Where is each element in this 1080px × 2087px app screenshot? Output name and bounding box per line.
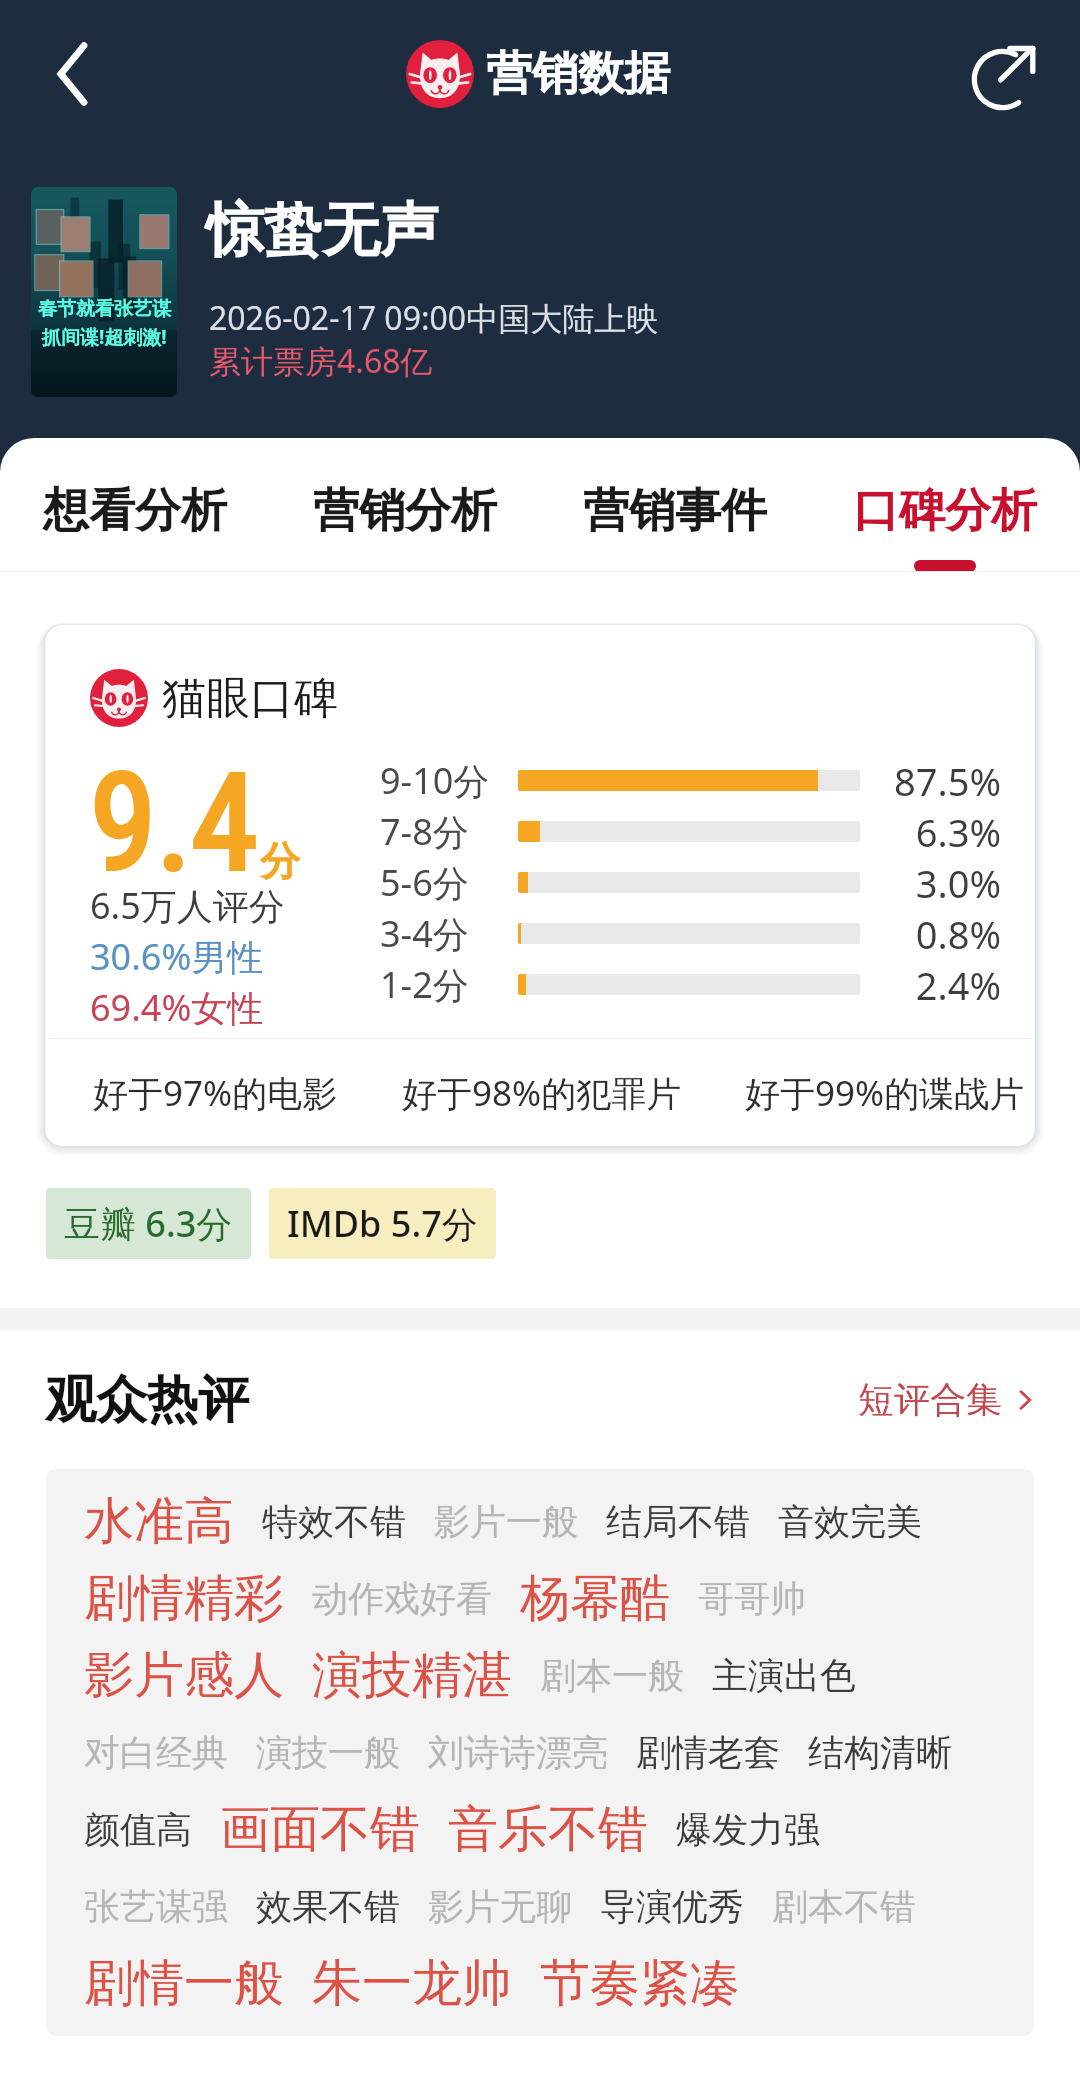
staticText: 春节就看张艺谋 [38, 297, 171, 321]
button[interactable]: 杨幂酷 [520, 1567, 670, 1630]
button[interactable]: 剧情一般 [84, 1952, 284, 2015]
button[interactable]: 水准高 [84, 1490, 234, 1553]
button[interactable]: 结构清晰 [808, 1730, 952, 1775]
staticText: 6.3% [873, 806, 1001, 857]
staticText: 2.4% [873, 959, 1001, 1010]
button[interactable]: 豆瓣 6.3分 [46, 1188, 251, 1259]
button[interactable]: 哥哥帅 [698, 1576, 806, 1621]
staticText: 抓间谍!超刺激! [42, 324, 167, 350]
staticText: 想看分析 [43, 482, 227, 540]
staticText: 2026-02-17 09:00中国大陆上映 [209, 296, 659, 340]
staticText: 好于98%的犯罪片 [402, 1069, 682, 1117]
staticText: 1-2分 [380, 960, 500, 1009]
button[interactable]: 影片感人 [84, 1644, 284, 1707]
staticText: 9.4 [90, 745, 258, 902]
staticText: 30.6%男性 [90, 932, 264, 981]
button[interactable]: 朱一龙帅 [312, 1952, 512, 2015]
button[interactable]: Share [962, 28, 1054, 120]
button[interactable]: 短评合集 [858, 1365, 1040, 1434]
staticText: 3.0% [873, 857, 1001, 908]
staticText: 惊蛰无声 [206, 194, 438, 267]
staticText: 营销分析 [313, 482, 497, 540]
staticText: 分 [260, 836, 300, 886]
button[interactable]: 爆发力强 [676, 1807, 820, 1852]
button[interactable]: 音乐不错 [448, 1798, 648, 1861]
staticText: 营销事件 [583, 482, 767, 540]
button[interactable]: 想看分析 [0, 438, 270, 572]
staticText: 9-10分 [380, 756, 500, 805]
staticText: 豆瓣 6.3分 [64, 1199, 233, 1248]
button[interactable]: 画面不错 [220, 1798, 420, 1861]
button[interactable]: 动作戏好看 [312, 1576, 492, 1621]
staticText: 0.8% [873, 908, 1001, 959]
button[interactable]: 营销事件 [540, 438, 810, 572]
button[interactable]: 影片一般 [434, 1499, 578, 1544]
button[interactable]: 演技精湛 [312, 1644, 512, 1707]
staticText: 短评合集 [858, 1377, 1002, 1422]
staticText: 观众热评 [45, 1368, 249, 1432]
staticText: 营销数据 [486, 45, 670, 103]
button[interactable]: 导演优秀 [600, 1884, 744, 1929]
button[interactable]: 口碑分析 [810, 438, 1080, 572]
staticText: 87.5% [873, 755, 1001, 806]
staticText: 5-6分 [380, 858, 500, 907]
staticText: 口碑分析 [853, 482, 1037, 540]
button[interactable]: Back [26, 28, 118, 120]
staticText: 3-4分 [380, 909, 500, 958]
button[interactable]: 营销分析 [270, 438, 540, 572]
staticText: 好于99%的谍战片 [745, 1069, 1025, 1117]
button[interactable]: 结局不错 [606, 1499, 750, 1544]
button[interactable]: 剧情精彩 [84, 1567, 284, 1630]
staticText: 6.5万人评分 [90, 881, 285, 930]
staticText: 7-8分 [380, 807, 500, 856]
button[interactable]: 影片无聊 [428, 1884, 572, 1929]
button[interactable]: 音效完美 [778, 1499, 922, 1544]
button[interactable]: 张艺谋强 [84, 1884, 228, 1929]
button[interactable]: 剧本不错 [772, 1884, 916, 1929]
button[interactable]: 节奏紧凑 [540, 1952, 740, 2015]
button[interactable]: 剧本一般 [540, 1653, 684, 1698]
button[interactable]: IMDb 5.7分 [269, 1188, 496, 1259]
button[interactable]: 演技一般 [256, 1730, 400, 1775]
button[interactable]: 主演出色 [712, 1653, 856, 1698]
staticText: IMDb 5.7分 [287, 1199, 478, 1248]
staticText: 好于97%的电影 [93, 1069, 338, 1117]
staticText: 猫眼口碑 [162, 671, 338, 726]
button[interactable]: 刘诗诗漂亮 [428, 1730, 608, 1775]
button[interactable]: 对白经典 [84, 1730, 228, 1775]
button[interactable]: 效果不错 [256, 1884, 400, 1929]
staticText: 累计票房4.68亿 [209, 339, 433, 383]
button[interactable]: 颜值高 [84, 1807, 192, 1852]
button[interactable]: 剧情老套 [636, 1730, 780, 1775]
staticText: 69.4%女性 [90, 983, 264, 1032]
button[interactable]: 特效不错 [262, 1499, 406, 1544]
